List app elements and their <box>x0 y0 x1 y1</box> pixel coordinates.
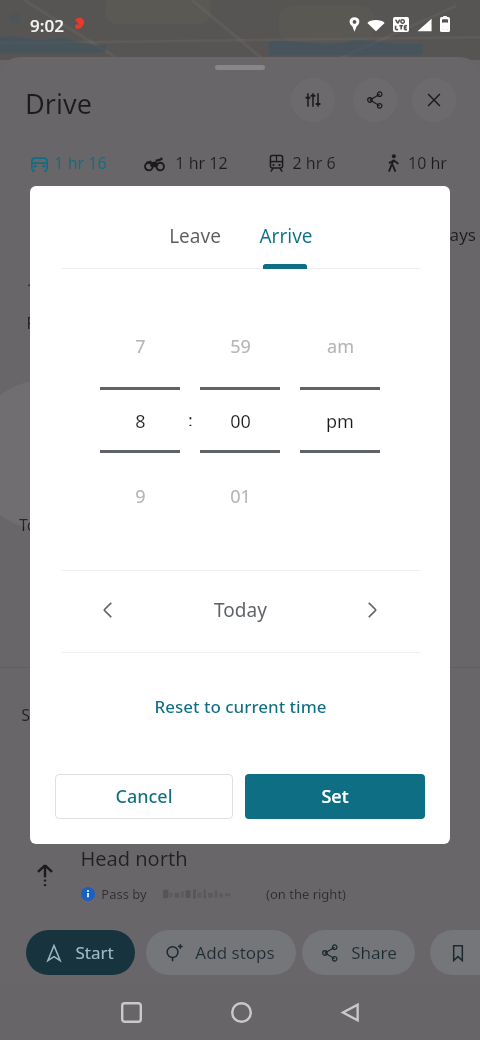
staticText: 9:02 <box>30 14 64 37</box>
staticText: 1 hr 16 · 56 miles <box>26 278 154 300</box>
staticText: Head north <box>80 845 188 872</box>
staticText: Toll road on this route <box>19 514 184 536</box>
staticText: 1 hr 16 <box>54 152 107 174</box>
button[interactable]: Today <box>160 588 320 632</box>
button[interactable]: 1 hr 12 <box>137 145 228 181</box>
staticText: 01 <box>230 484 251 509</box>
staticText: 2 hr 6 <box>292 152 336 174</box>
button[interactable]: Reset to current time <box>130 684 350 728</box>
button[interactable]: 2 hr 6 <box>259 145 336 181</box>
button[interactable]: Close <box>412 78 456 122</box>
button[interactable]: 1 hr 16 <box>22 145 107 181</box>
staticText: : <box>188 408 193 426</box>
staticText: 1 hr 12 <box>175 152 228 174</box>
staticText: Drive <box>25 85 92 122</box>
staticText: 00 <box>230 409 251 434</box>
staticText: (on the right) <box>266 885 346 903</box>
button[interactable]: Add stops <box>146 930 296 975</box>
button[interactable]: Previous day <box>86 588 130 632</box>
button[interactable]: Start <box>26 930 135 975</box>
staticText: Today <box>214 597 267 623</box>
staticText: Start <box>75 941 114 964</box>
button[interactable]: Home <box>217 988 265 1036</box>
staticText: pm <box>326 409 354 434</box>
button[interactable]: 10 hr <box>376 145 447 181</box>
staticText: Add stops <box>195 941 275 964</box>
staticText: 7 <box>135 334 146 359</box>
button[interactable]: Cancel <box>55 774 233 819</box>
staticText: Pass by <box>101 885 147 903</box>
staticText: Set <box>321 784 349 809</box>
button[interactable]: Filter options <box>291 78 335 122</box>
staticText: 9 <box>135 484 146 509</box>
button[interactable]: Next day <box>350 588 394 632</box>
staticText: 10 hr <box>408 152 447 174</box>
staticText: Cancel <box>115 784 173 809</box>
button[interactable]: Set <box>245 774 425 819</box>
staticText: Leave <box>169 223 221 249</box>
button[interactable]: Arrive <box>228 214 344 258</box>
button[interactable]: Recents <box>107 988 155 1036</box>
staticText: Share <box>351 941 397 964</box>
staticText: am <box>327 334 354 359</box>
staticText: 8 <box>135 409 146 434</box>
staticText: Send directions to your phone <box>21 704 248 726</box>
button[interactable]: Share <box>302 930 415 975</box>
staticText: Arrive <box>259 223 313 249</box>
button[interactable]: Share <box>353 78 397 122</box>
staticText: Typical traffic delays <box>315 223 476 246</box>
staticText: 59 <box>230 334 251 359</box>
staticText: Reset to current time <box>154 695 327 718</box>
button[interactable]: Back <box>326 988 374 1036</box>
staticText: Fastest route now due to traffic conditi… <box>26 312 344 334</box>
button[interactable]: Leave <box>137 214 253 258</box>
button[interactable]: S <box>430 930 480 975</box>
